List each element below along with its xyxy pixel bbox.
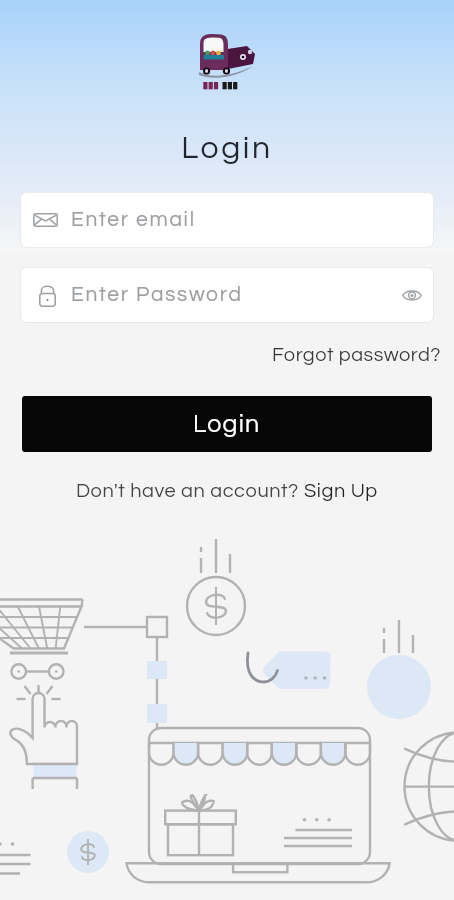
staticText: Enter Password bbox=[71, 284, 243, 306]
button[interactable]: Enter Password bbox=[20, 267, 434, 323]
button[interactable]: Enter email bbox=[20, 192, 434, 248]
button[interactable]: Show password bbox=[395, 278, 429, 312]
staticText: Login bbox=[193, 411, 261, 437]
button[interactable]: Sign Up bbox=[304, 481, 378, 502]
staticText: Enter email bbox=[71, 209, 196, 231]
button[interactable]: Forgot password? bbox=[272, 345, 442, 366]
staticText: Don't have an account? bbox=[76, 481, 304, 502]
staticText: Login bbox=[0, 132, 454, 165]
button[interactable]: Login bbox=[22, 396, 432, 452]
